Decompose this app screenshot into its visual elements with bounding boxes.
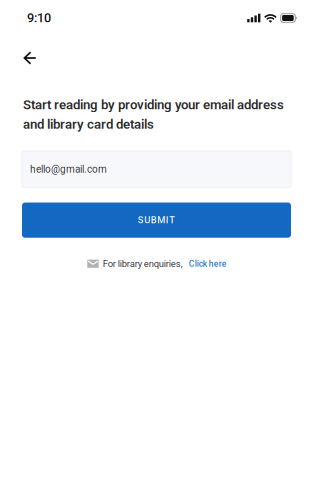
staticText: Click here [189, 259, 227, 269]
button[interactable]: Back [16, 44, 44, 72]
button[interactable]: Click here [183, 256, 227, 272]
button[interactable]: SUBMIT [22, 202, 291, 238]
staticText: hello@gmail.com [30, 163, 107, 175]
staticText: For library enquiries, [103, 258, 183, 269]
staticText: Start reading by providing your email ad… [23, 97, 284, 132]
staticText: SUBMIT [138, 215, 175, 226]
staticText: 9:10 [27, 11, 51, 25]
